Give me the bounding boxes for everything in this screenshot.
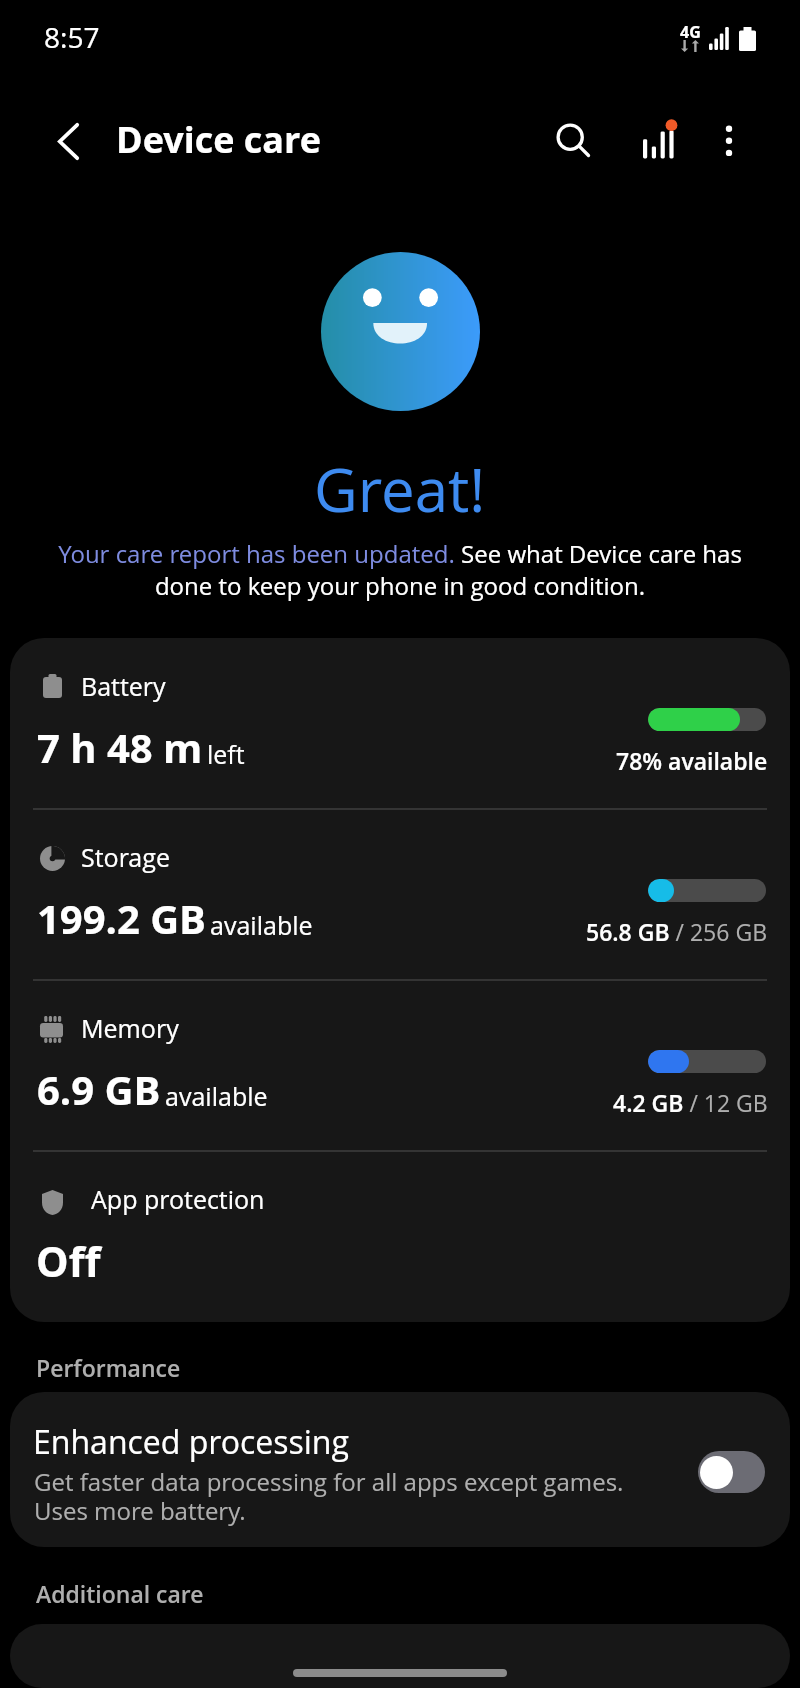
staticText: Memory	[81, 1011, 179, 1045]
staticText: Device care	[116, 115, 321, 164]
button[interactable]: Storage	[10, 809, 790, 980]
staticText: Storage	[81, 840, 170, 874]
staticText: left	[207, 737, 245, 771]
button[interactable]: Diagnostics	[622, 105, 694, 177]
staticText: Great!	[314, 448, 486, 530]
staticText: 6.9 GB	[37, 1062, 161, 1116]
staticText: Your care report has been updated. See w…	[44, 537, 756, 602]
staticText: 4G	[680, 21, 701, 43]
staticText: Get faster data processing for all apps …	[34, 1465, 639, 1527]
button[interactable]: Memory	[10, 980, 790, 1151]
button[interactable]: Enhanced processing	[698, 1451, 765, 1493]
staticText: Additional care	[36, 1578, 204, 1609]
button[interactable]: Enhanced processing	[10, 1392, 790, 1547]
button[interactable]: Navigate up	[33, 105, 104, 176]
staticText: Performance	[36, 1352, 181, 1383]
button[interactable]: Battery	[10, 638, 790, 809]
staticText: App protection	[91, 1182, 265, 1216]
staticText: available	[210, 908, 313, 942]
staticText: 199.2 GB	[37, 891, 206, 945]
button[interactable]	[10, 1624, 790, 1688]
button[interactable]: Search	[534, 105, 606, 177]
staticText: Battery	[81, 669, 166, 703]
staticText: Enhanced processing	[33, 1420, 349, 1464]
staticText: 4.2 GB / 12 GB	[613, 1087, 768, 1118]
staticText: 7 h 48 m	[37, 720, 203, 774]
staticText: available	[165, 1079, 268, 1113]
staticText: 56.8 GB / 256 GB	[586, 916, 768, 947]
staticText: 8:57	[44, 18, 100, 56]
staticText: 78% available	[616, 745, 768, 776]
button[interactable]: More options	[697, 105, 763, 171]
staticText: Off	[36, 1233, 101, 1289]
button[interactable]: App protection	[10, 1151, 790, 1322]
